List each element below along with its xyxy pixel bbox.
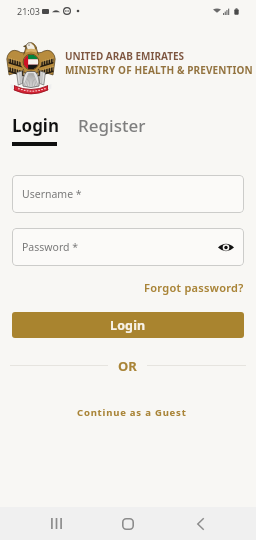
staticText: Forgot password? bbox=[144, 280, 244, 295]
staticText: Username * bbox=[22, 187, 82, 201]
button[interactable]: Login bbox=[12, 114, 60, 137]
staticText: MINISTRY OF HEALTH & PREVENTION bbox=[65, 63, 253, 77]
staticText: OR bbox=[118, 357, 137, 375]
button[interactable]: Forgot password? bbox=[144, 280, 256, 295]
staticText: 21:03 bbox=[17, 5, 41, 17]
button[interactable]: Register bbox=[78, 114, 146, 137]
button[interactable]: Back bbox=[178, 507, 222, 540]
staticText: Login bbox=[110, 317, 146, 334]
button[interactable]: Home bbox=[106, 507, 150, 540]
staticText: UNITED ARAB EMIRATES bbox=[65, 49, 185, 63]
button[interactable]: Password * bbox=[12, 228, 244, 266]
button[interactable]: Recent apps bbox=[34, 507, 78, 540]
staticText: Continue as a Guest bbox=[77, 406, 187, 418]
staticText: Register bbox=[78, 114, 146, 137]
button[interactable]: Show password bbox=[216, 237, 236, 257]
button[interactable]: Continue as a Guest bbox=[73, 402, 191, 422]
staticText: Password * bbox=[22, 240, 79, 254]
button[interactable]: Username * bbox=[12, 175, 244, 213]
button[interactable]: Login bbox=[12, 312, 244, 338]
staticText: Login bbox=[12, 114, 60, 137]
